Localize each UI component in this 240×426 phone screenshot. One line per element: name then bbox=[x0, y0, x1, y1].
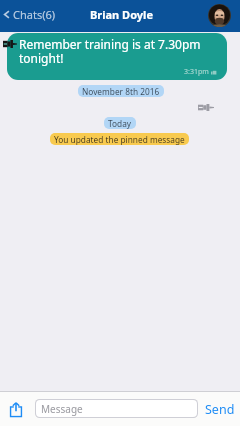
button[interactable]: Message bbox=[36, 400, 197, 417]
staticText: Remember training is at 7.30pm tonight! bbox=[19, 36, 201, 66]
button[interactable]: Profile photo bbox=[208, 4, 231, 27]
other: Pinned bbox=[198, 104, 214, 111]
button[interactable]: Share bbox=[8, 402, 24, 417]
staticText: Message bbox=[41, 402, 83, 416]
staticText: Send bbox=[205, 401, 235, 418]
staticText: You updated the pinned message bbox=[54, 134, 185, 145]
button[interactable]: Chats(6) bbox=[1, 7, 56, 22]
staticText: Chats(6) bbox=[13, 7, 56, 22]
button[interactable]: Send bbox=[205, 401, 235, 418]
button[interactable]: Today bbox=[108, 117, 132, 129]
staticText: Brian Doyle bbox=[90, 7, 153, 22]
button[interactable]: November 8th 2016 bbox=[82, 85, 160, 97]
staticText: November 8th 2016 bbox=[82, 86, 160, 97]
button[interactable]: Remember training is at 7.30pm tonight! bbox=[7, 33, 227, 80]
staticText: 3:31pm bbox=[184, 67, 209, 77]
staticText: Today bbox=[108, 118, 132, 129]
button[interactable]: You updated the pinned message bbox=[54, 133, 185, 145]
